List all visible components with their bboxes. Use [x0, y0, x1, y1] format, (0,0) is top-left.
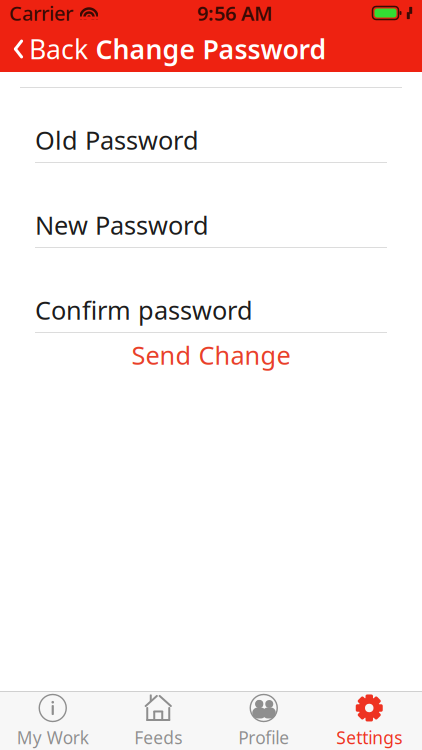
- button[interactable]: Settings: [316, 692, 422, 750]
- button[interactable]: Feeds: [105, 692, 211, 750]
- staticText: My Work: [17, 726, 89, 749]
- staticText: Confirm password: [35, 293, 253, 327]
- staticText: Profile: [238, 726, 289, 749]
- staticText: Old Password: [35, 123, 199, 157]
- button[interactable]: Profile: [211, 692, 316, 750]
- staticText: Send Change: [131, 338, 290, 372]
- staticText: Change Password: [95, 31, 326, 67]
- staticText: 9:56 AM: [197, 0, 273, 26]
- staticText: Carrier: [9, 0, 73, 26]
- button[interactable]: My Work: [0, 692, 105, 750]
- button[interactable]: Send Change: [0, 333, 422, 377]
- staticText: Settings: [336, 726, 402, 749]
- staticText: Back: [29, 31, 88, 67]
- button[interactable]: Back: [0, 27, 102, 71]
- staticText: Feeds: [134, 726, 182, 749]
- staticText: New Password: [35, 208, 209, 242]
